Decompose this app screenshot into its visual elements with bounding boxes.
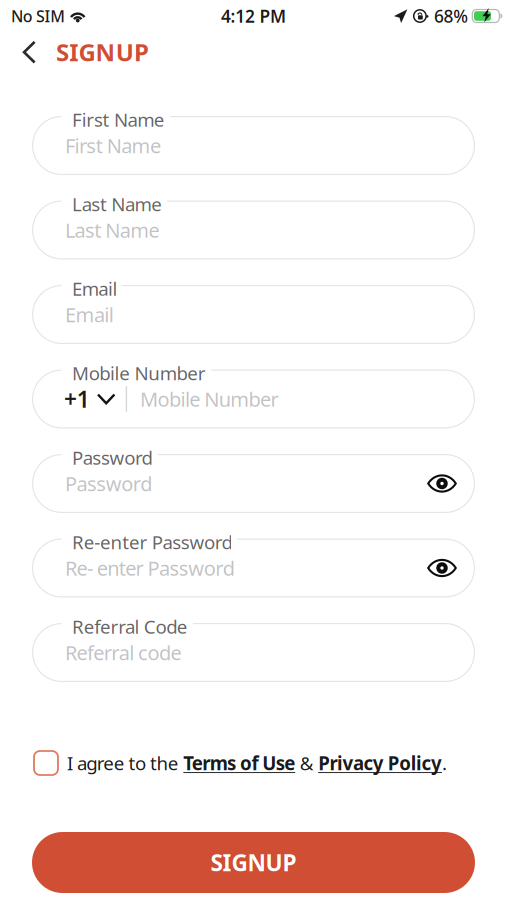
staticText: Referral code — [65, 639, 181, 666]
staticText: 4:12 PM — [221, 4, 286, 27]
button[interactable]: Select country code — [32, 369, 126, 428]
staticText: I agree to the — [67, 751, 183, 775]
staticText: +1 — [64, 384, 90, 414]
staticText: SIGNUP — [210, 847, 296, 877]
staticText: Email — [65, 301, 114, 328]
staticText: Last Name — [72, 191, 162, 216]
staticText: Last Name — [65, 217, 160, 243]
staticText: Referral Code — [72, 614, 188, 639]
staticText: Password — [65, 470, 152, 497]
staticText: . — [442, 751, 447, 775]
button[interactable]: Back — [11, 31, 48, 72]
button[interactable]: Show re-entered password — [416, 543, 468, 593]
button[interactable]: SIGNUP — [32, 832, 475, 893]
staticText: No SIM — [11, 5, 65, 27]
staticText: Terms of Use — [183, 751, 295, 775]
staticText: First Name — [72, 107, 165, 132]
button[interactable]: I agree to the terms — [34, 751, 58, 775]
staticText: Password — [72, 445, 153, 470]
staticText: Re-enter Password — [72, 529, 232, 554]
staticText: First Name — [65, 132, 161, 159]
staticText: Mobile Number — [72, 360, 206, 385]
staticText: Mobile Number — [140, 386, 278, 412]
button[interactable]: Privacy Policy — [318, 751, 442, 775]
staticText: Email — [72, 276, 118, 301]
button[interactable]: Terms of Use — [183, 751, 295, 775]
staticText: Re- enter Password — [65, 555, 235, 581]
staticText: & — [295, 751, 318, 775]
button[interactable]: Show password — [416, 458, 468, 508]
staticText: SIGNUP — [56, 36, 149, 68]
staticText: Privacy Policy — [318, 751, 442, 775]
staticText: 68% — [434, 4, 468, 27]
